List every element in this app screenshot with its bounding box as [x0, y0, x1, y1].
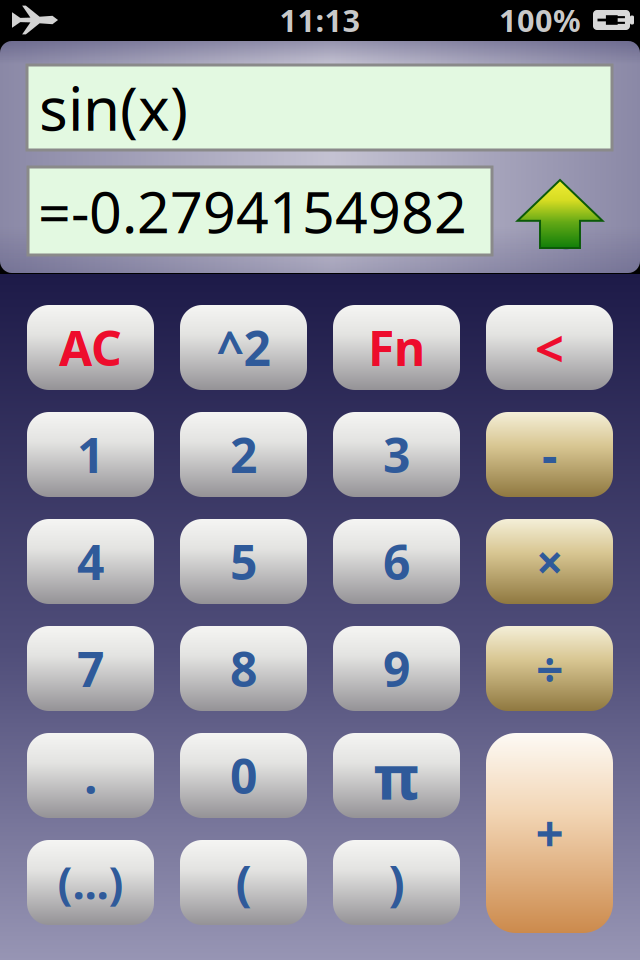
- button[interactable]: +: [486, 733, 613, 933]
- button[interactable]: 6: [333, 519, 460, 604]
- button[interactable]: .: [27, 733, 154, 818]
- button[interactable]: <: [486, 305, 613, 390]
- staticText: sin(x): [39, 68, 188, 147]
- button[interactable]: 1: [27, 412, 154, 497]
- button[interactable]: 0: [180, 733, 307, 818]
- staticText: ): [388, 851, 404, 914]
- button[interactable]: ^2: [180, 305, 307, 390]
- button[interactable]: (: [180, 840, 307, 925]
- button[interactable]: π: [333, 733, 460, 818]
- staticText: (...): [57, 853, 123, 912]
- button[interactable]: Evaluate: [515, 178, 605, 250]
- button[interactable]: 8: [180, 626, 307, 711]
- staticText: 100%: [499, 0, 581, 40]
- button[interactable]: 2: [180, 412, 307, 497]
- button[interactable]: ÷: [486, 626, 613, 711]
- staticText: Fn: [368, 316, 425, 379]
- button[interactable]: -: [486, 412, 613, 497]
- button[interactable]: Fn: [333, 305, 460, 390]
- staticText: 9: [383, 637, 410, 700]
- staticText: ×: [536, 530, 563, 593]
- button[interactable]: 5: [180, 519, 307, 604]
- button[interactable]: ×: [486, 519, 613, 604]
- staticText: 7: [77, 637, 104, 700]
- staticText: 6: [383, 530, 410, 593]
- staticText: 5: [230, 530, 257, 593]
- staticText: 1: [77, 423, 104, 486]
- button[interactable]: (...): [27, 840, 154, 925]
- staticText: 3: [383, 423, 410, 486]
- button[interactable]: 4: [27, 519, 154, 604]
- staticText: π: [373, 735, 419, 816]
- button[interactable]: ): [333, 840, 460, 925]
- staticText: 11:13: [279, 0, 360, 40]
- staticText: -: [542, 423, 557, 486]
- button[interactable]: 3: [333, 412, 460, 497]
- staticText: 0: [230, 744, 257, 807]
- staticText: .: [84, 744, 97, 807]
- staticText: 2: [230, 423, 257, 486]
- staticText: (: [235, 851, 251, 914]
- button[interactable]: 9: [333, 626, 460, 711]
- staticText: +: [535, 800, 563, 866]
- staticText: 8: [230, 637, 257, 700]
- button[interactable]: 7: [27, 626, 154, 711]
- staticText: 4: [77, 530, 104, 593]
- staticText: <: [535, 314, 564, 381]
- staticText: AC: [59, 316, 122, 379]
- staticText: ÷: [536, 637, 563, 700]
- button[interactable]: AC: [27, 305, 154, 390]
- staticText: =-0.2794154982: [38, 173, 467, 249]
- staticText: ^2: [216, 316, 270, 379]
